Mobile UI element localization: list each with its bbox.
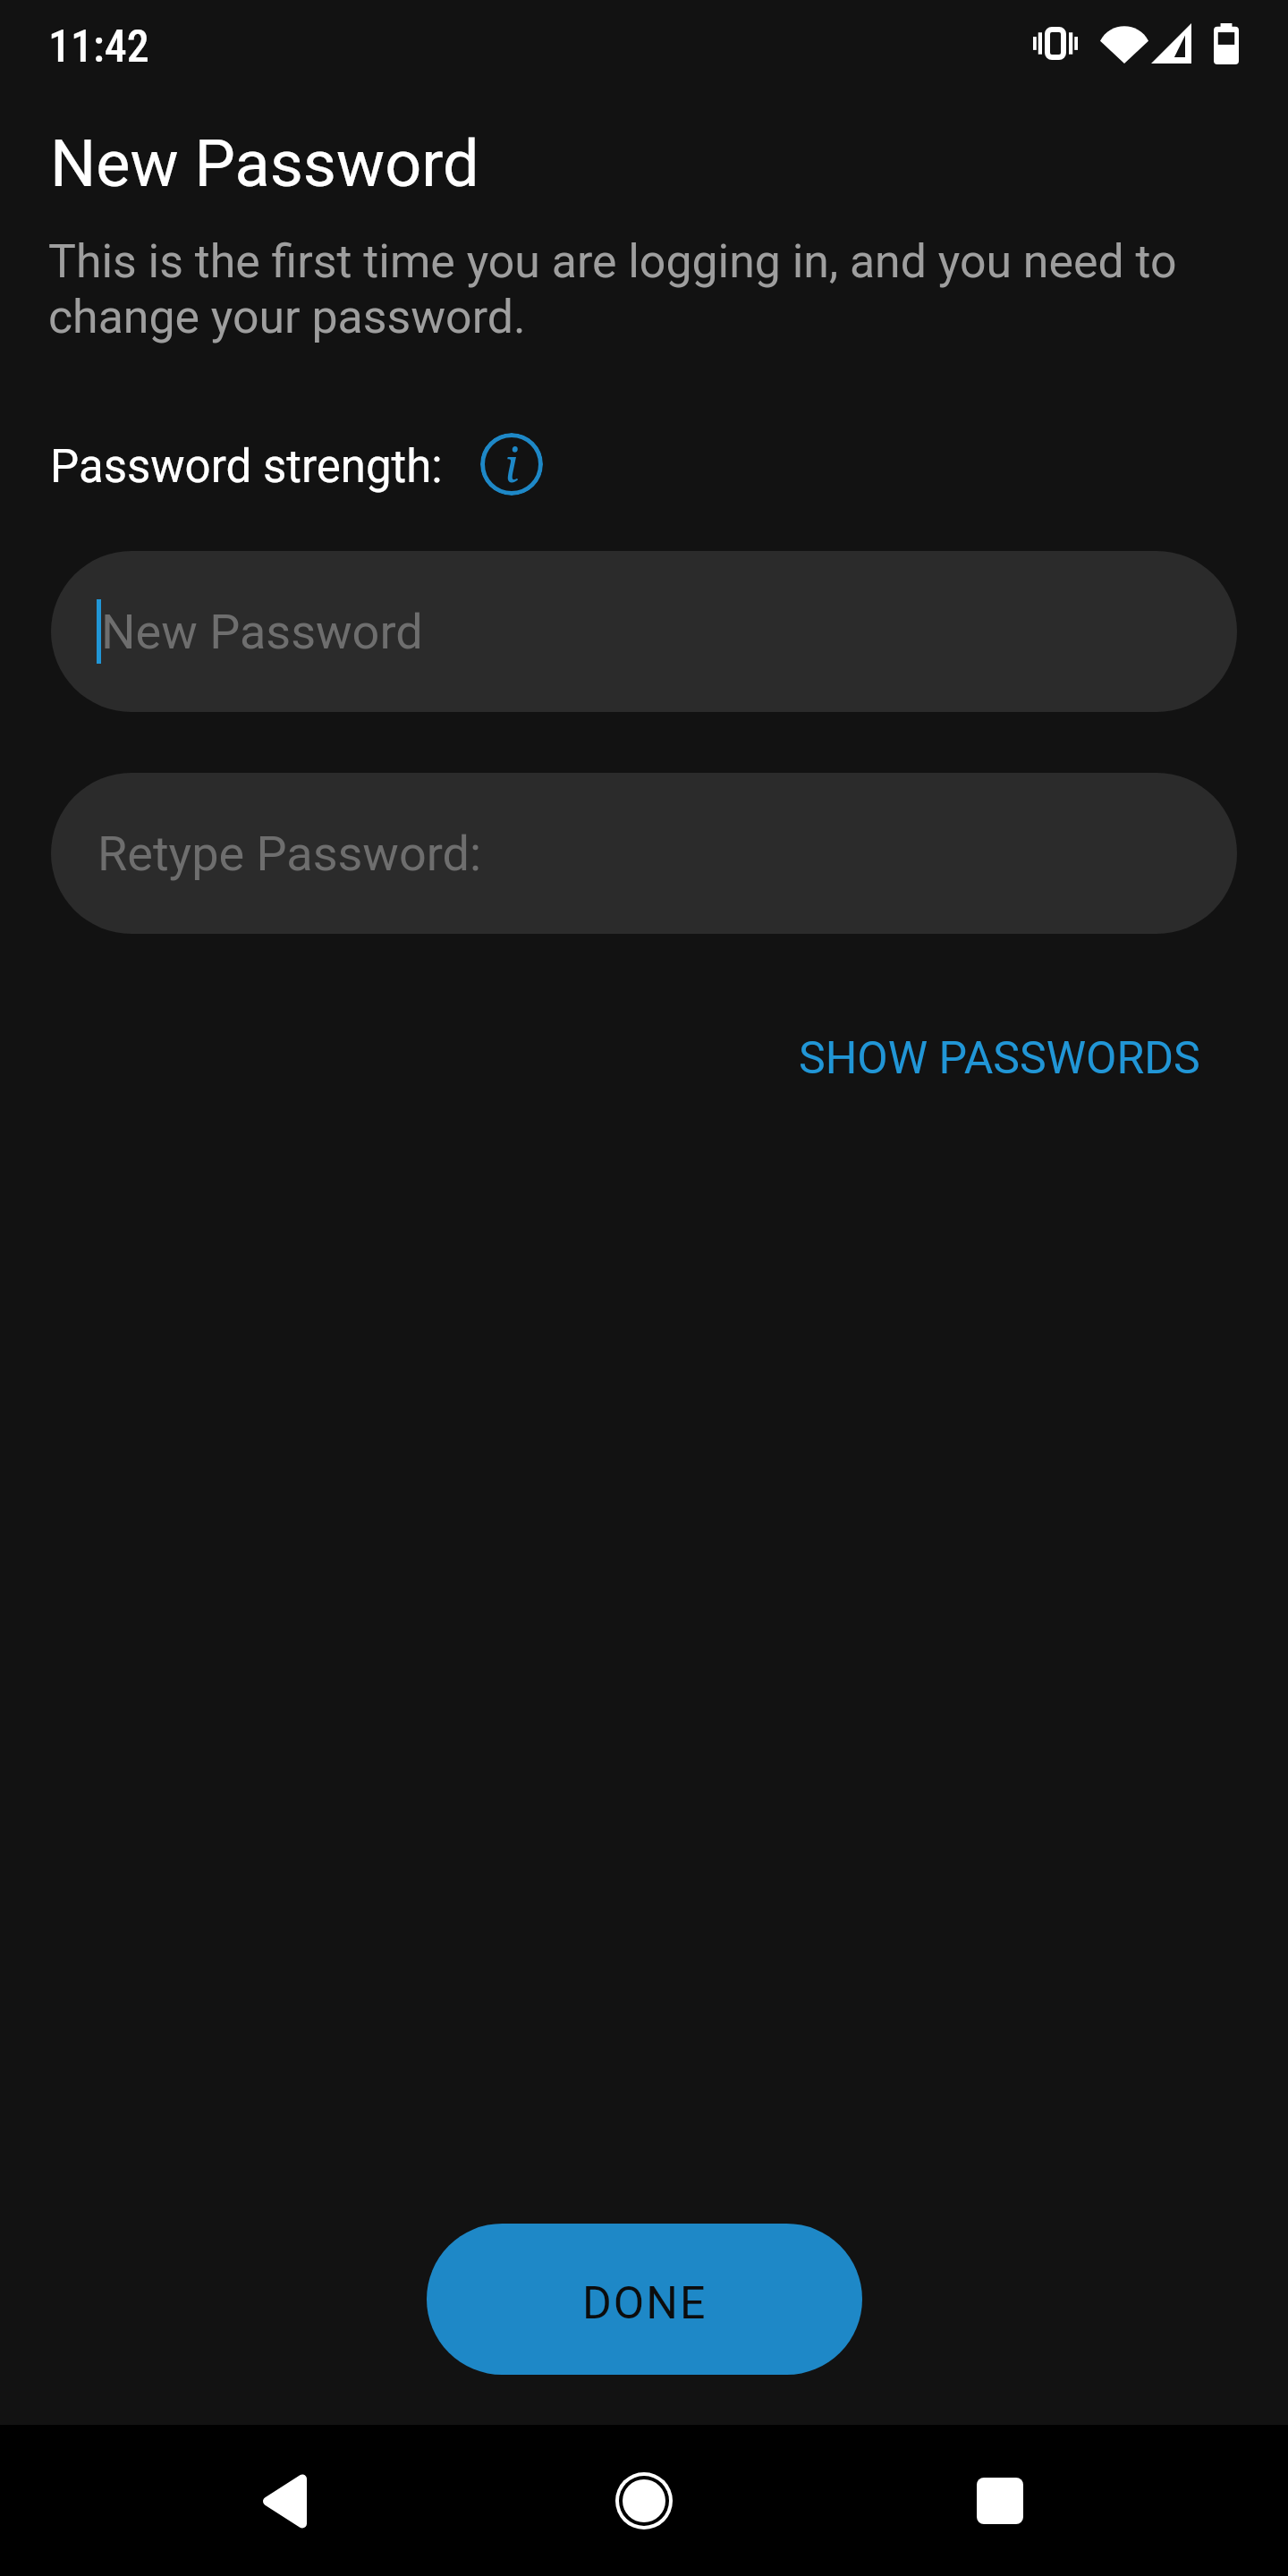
staticText: This is the first time you are logging i… [48,234,1233,344]
button[interactable]: New Password [51,551,1237,712]
staticText: DONE [582,2277,708,2330]
button[interactable]: SHOW PASSWORDS [799,1032,1200,1085]
button[interactable]: Password strength information [480,433,543,496]
button[interactable]: Home [580,2436,708,2565]
staticText: New Password [50,126,479,201]
staticText: i [504,433,519,495]
staticText: 11:42 [48,21,149,73]
button[interactable]: Recent apps [936,2436,1064,2565]
staticText: Password strength: [50,440,443,494]
staticText: New Password [101,604,423,660]
staticText: Retype Password: [97,826,482,882]
staticText: SHOW PASSWORDS [799,1032,1200,1085]
button[interactable]: Retype Password: [51,773,1237,934]
button[interactable]: DONE [427,2224,862,2375]
button[interactable]: Back [220,2436,349,2565]
